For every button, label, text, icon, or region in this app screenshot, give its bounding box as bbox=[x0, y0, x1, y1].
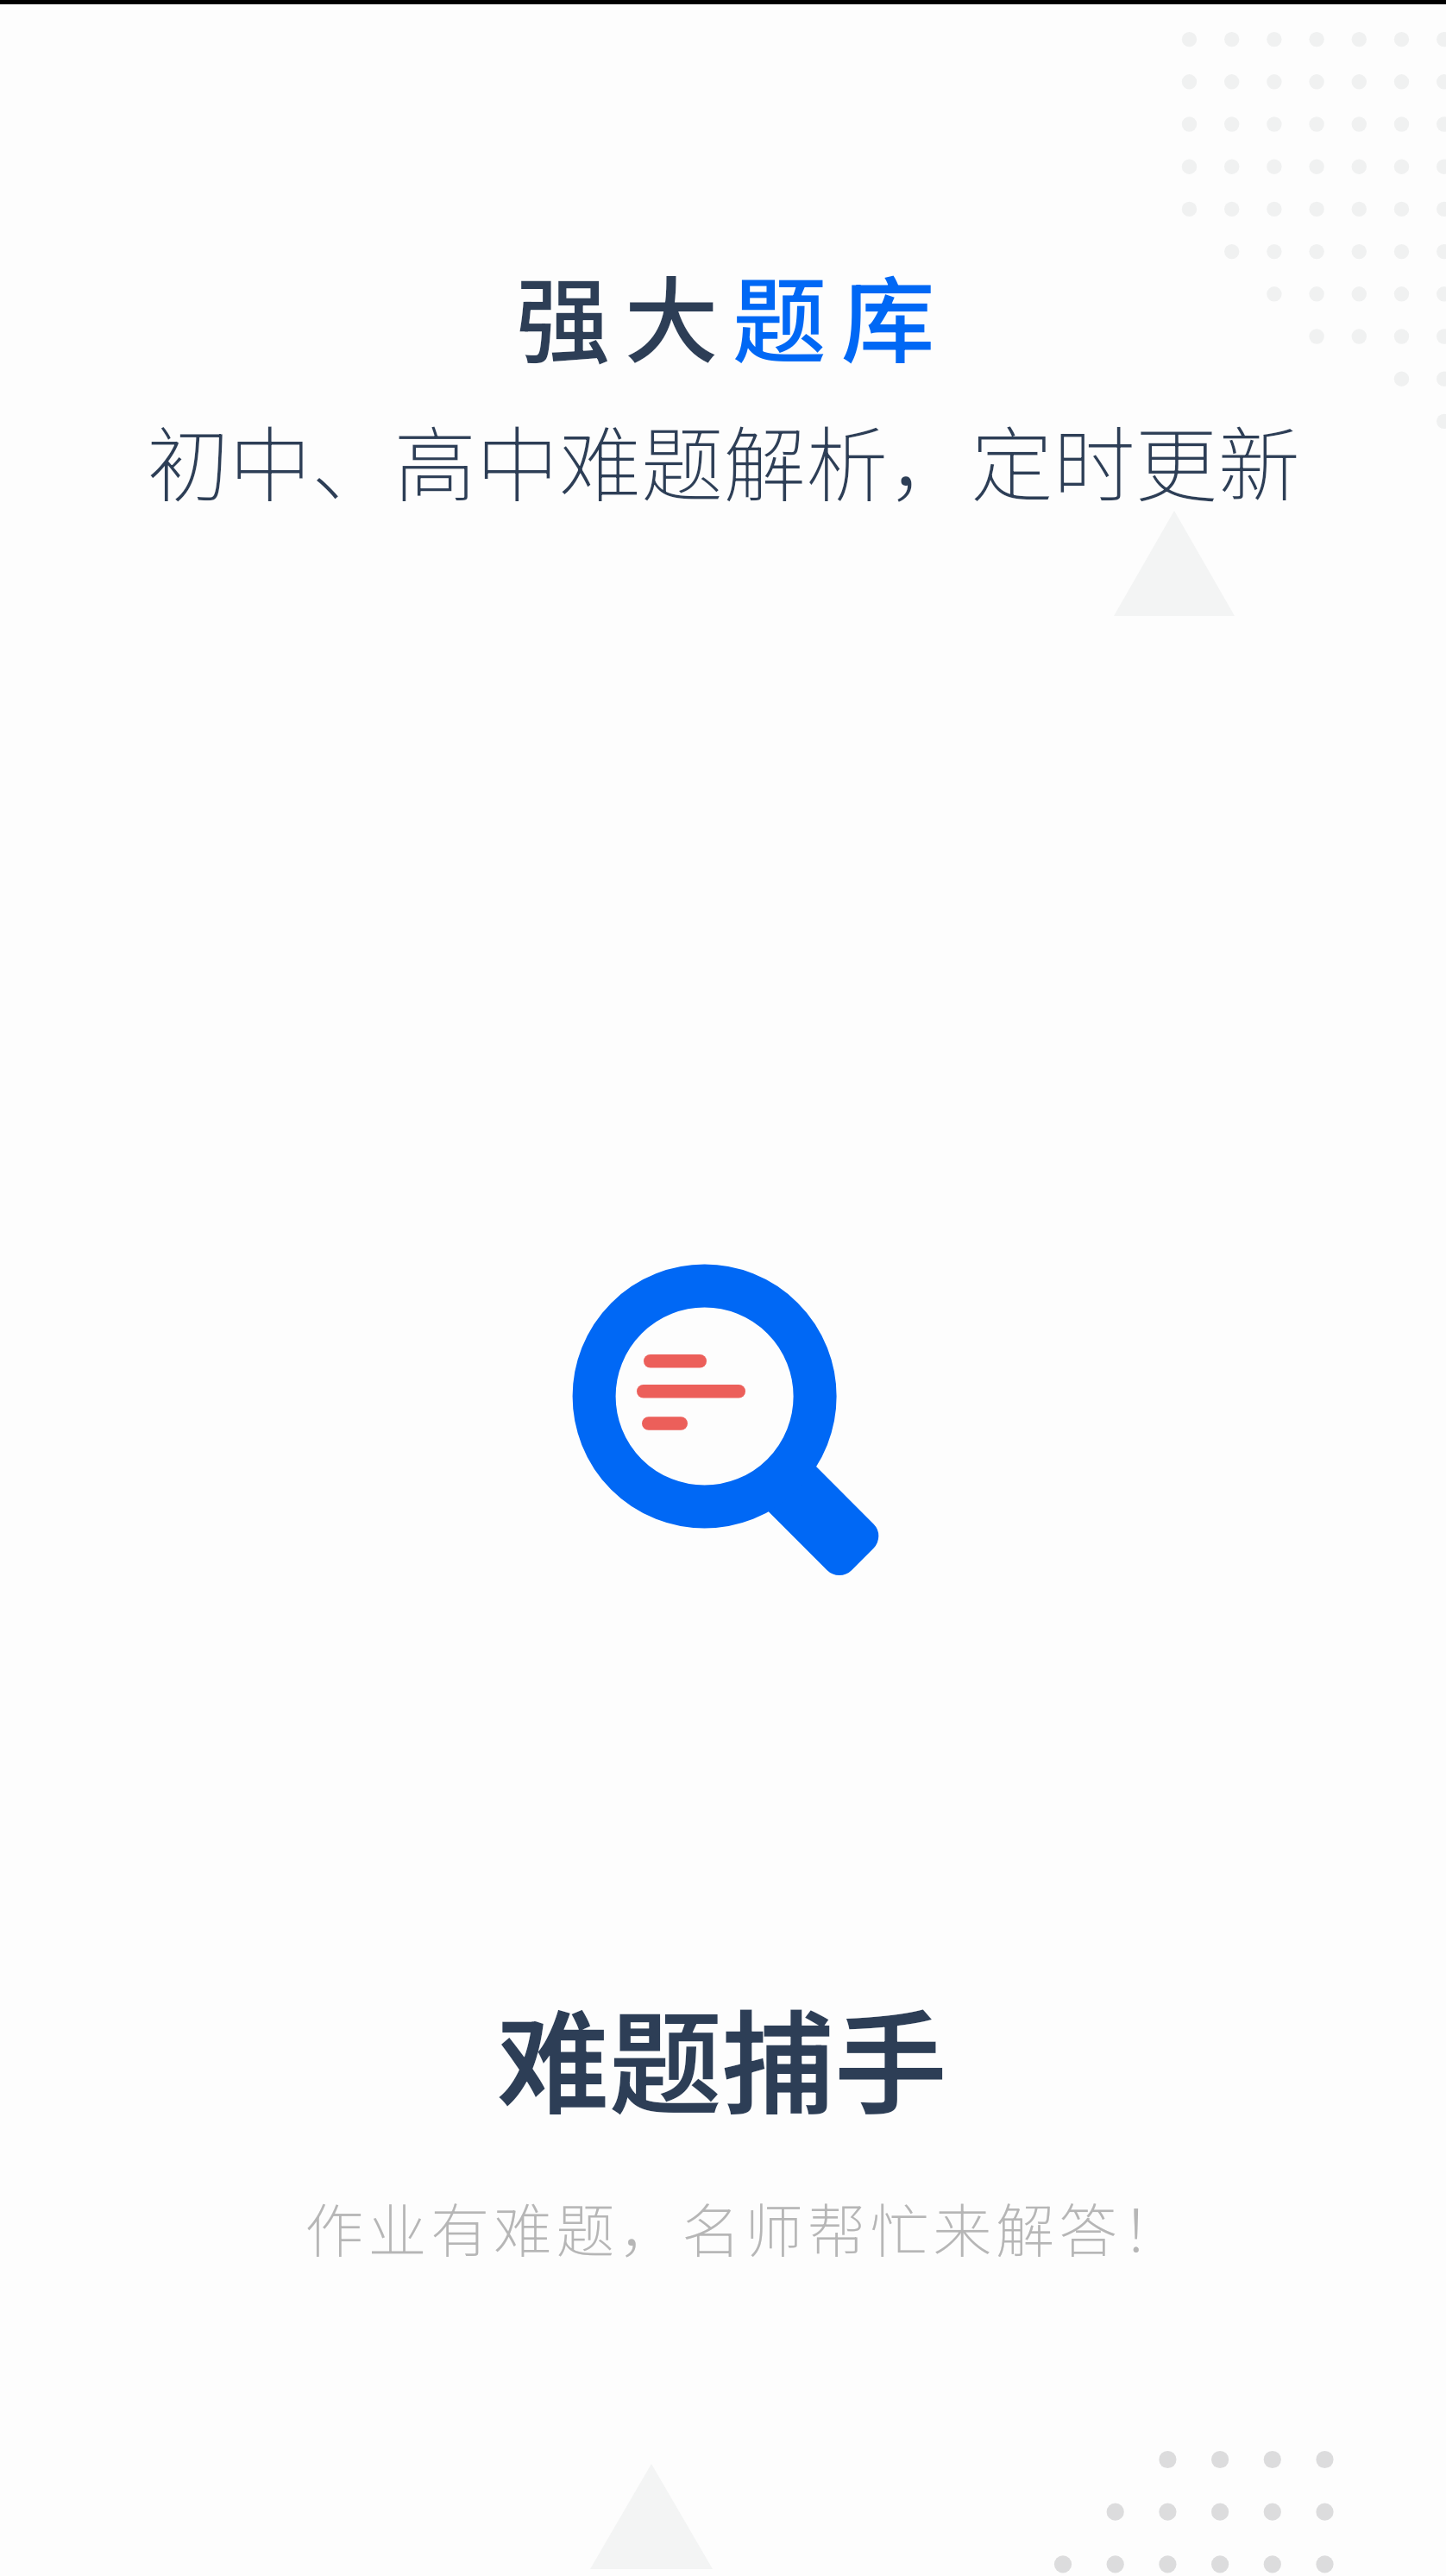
staticText: 作业有难题，名师帮忙来解答！ bbox=[305, 2184, 1185, 2269]
staticText: 难题捕手 bbox=[496, 1975, 947, 2138]
staticText: 强大题库 bbox=[516, 247, 949, 383]
button[interactable]: Search question bank bbox=[549, 1241, 894, 1586]
staticText: 初中、高中难题解析，定时更新 bbox=[147, 399, 1300, 518]
